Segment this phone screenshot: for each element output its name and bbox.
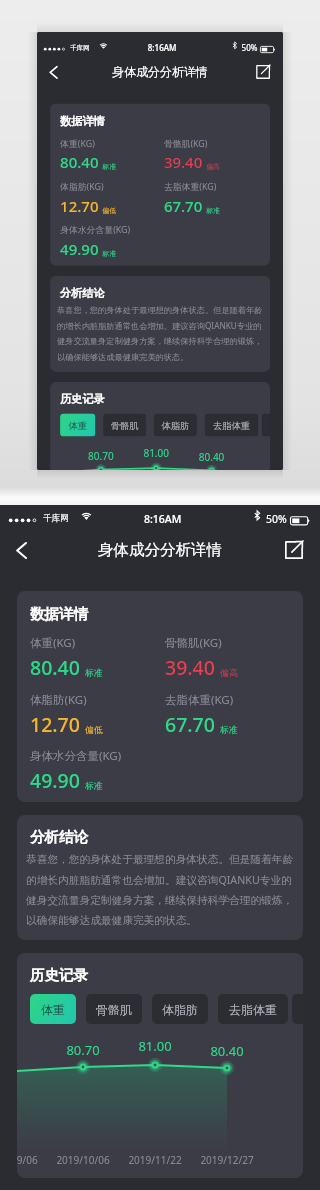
staticText: 历史记录 [30,966,88,984]
staticText: 去脂体重 [229,1002,277,1017]
staticText: 身体成分分析详情 [112,64,208,80]
staticText: 去脂体重(KG) [165,692,234,708]
button[interactable]: 内脏脂肪 [292,994,303,1024]
staticText: 标准 [85,780,103,791]
staticText: 偏低 [85,724,103,735]
staticText: 标准 [102,162,116,170]
staticText: 标准 [102,249,116,257]
staticText: 2019/09/06 [17,1153,71,1167]
staticText: 体重 [68,420,87,431]
staticText: 81.00 [110,446,202,460]
staticText: 2019/12/27 [167,1153,287,1167]
button[interactable]: Back [39,58,67,86]
staticText: 千库网 [43,513,69,524]
staticText: 去脂体重(KG) [164,181,217,193]
staticText: 81.00 [95,1037,215,1055]
staticText: 39.40 [165,654,215,681]
staticText: 分析结论 [30,828,88,846]
staticText: 2019/11/22 [95,1153,215,1167]
staticText: 身体水分含量(KG) [30,748,122,764]
staticText: 80.40 [60,152,99,173]
staticText: 骨骼肌 [111,420,138,431]
button[interactable]: 体重 [60,413,95,436]
button[interactable]: Back [3,532,39,568]
staticText: 67.70 [164,196,202,217]
staticText: 39.40 [164,152,202,173]
staticText: 体重(KG) [60,137,95,150]
staticText: 恭喜您，您的身体处于最理想的身体状态。但是随着年龄的增长内脏脂肪通常也会增加。建… [57,305,263,362]
staticText: 体重 [41,1002,65,1017]
staticText: 数据详情 [30,605,88,623]
staticText: 体重(KG) [30,635,76,651]
staticText: 体脂肪(KG) [30,692,87,708]
staticText: 数据详情 [60,114,105,128]
staticText: 80.40 [30,654,80,681]
staticText: 8:16AM [144,512,182,526]
staticText: 12.70 [30,711,80,738]
staticText: 去脂体重 [213,420,250,431]
staticText: 骨骼肌 [96,1002,132,1017]
staticText: 偏高 [206,162,220,170]
staticText: 偏高 [220,667,238,678]
staticText: 身体成分分析详情 [98,540,222,560]
staticText: 50% [242,43,258,54]
button[interactable]: 去脂体重 [205,413,258,436]
staticText: 千库网 [70,43,90,52]
staticText: 历史记录 [60,392,105,406]
staticText: 骨骼肌(KG) [165,635,222,651]
staticText: 50% [266,512,287,526]
staticText: 标准 [220,724,238,735]
staticText: 80.40 [167,1042,287,1060]
button[interactable]: 骨骼肌 [103,413,146,436]
staticText: 偏低 [102,206,116,214]
staticText: 2019/10/06 [23,1153,143,1167]
button[interactable]: 体重 [30,994,76,1024]
staticText: 标准 [206,206,220,214]
staticText: 80.40 [165,450,258,464]
button[interactable]: 去脂体重 [218,994,288,1024]
button[interactable]: 骨骼肌 [86,994,142,1024]
staticText: 8:16AM [148,43,177,54]
button[interactable]: 体脂肪 [152,994,208,1024]
staticText: 体脂肪(KG) [60,181,104,193]
button[interactable]: 内脏脂肪 [261,413,270,436]
button[interactable]: Share [249,58,277,86]
staticText: 恭喜您，您的身体处于最理想的身体状态。但是随着年龄的增长内脏脂肪通常也会增加。建… [26,853,294,927]
staticText: 49.90 [30,767,80,794]
staticText: 标准 [85,667,103,678]
button[interactable]: 体脂肪 [154,413,197,436]
staticText: 体脂肪 [162,1002,198,1017]
staticText: 80.70 [55,450,147,463]
button[interactable]: Share [276,532,312,568]
staticText: 分析结论 [60,286,105,300]
staticText: 80.70 [23,1041,143,1059]
staticText: 12.70 [60,196,99,217]
staticText: 骨骼肌(KG) [164,137,208,150]
staticText: 体脂肪 [162,420,189,431]
staticText: 49.90 [60,239,99,260]
staticText: 身体水分含量(KG) [60,224,131,237]
staticText: 67.70 [165,711,215,738]
